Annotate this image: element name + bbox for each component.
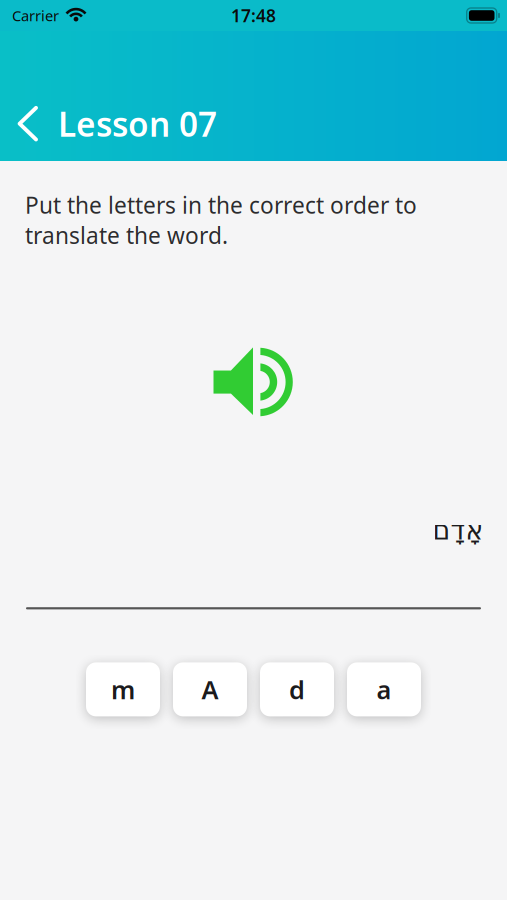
staticText: A [201, 673, 218, 706]
staticText: Put the letters in the correct order to … [25, 190, 417, 250]
button[interactable]: A [173, 662, 247, 716]
button[interactable]: d [260, 662, 334, 716]
staticText: d [289, 673, 305, 706]
button[interactable]: Back [7, 102, 49, 146]
button[interactable]: a [347, 662, 421, 716]
staticText: m [111, 673, 135, 706]
staticText: אָדָם [432, 515, 483, 545]
staticText: Carrier [12, 6, 59, 25]
staticText: 17:48 [231, 4, 276, 27]
button[interactable]: m [86, 662, 160, 716]
staticText: Lesson 07 [58, 102, 217, 146]
staticText: a [376, 673, 391, 706]
